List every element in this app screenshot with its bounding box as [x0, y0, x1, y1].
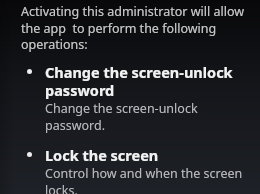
staticText: Control how and when the screen locks. — [45, 165, 252, 194]
button[interactable]: Lock the screen — [0, 145, 260, 194]
staticText: Activating this administrator will allow… — [21, 3, 250, 53]
button[interactable]: Change the screen-unlock password — [0, 62, 260, 134]
staticText: Lock the screen — [45, 145, 159, 165]
staticText: Change the screen-unlock password — [45, 62, 252, 100]
staticText: Change the screen-unlock password. — [45, 100, 252, 134]
